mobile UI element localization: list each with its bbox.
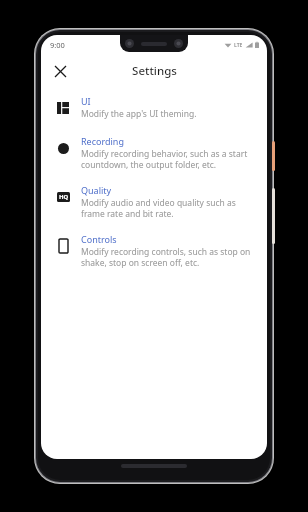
staticText: Settings — [132, 63, 177, 79]
staticText: Modify the app's UI theming. — [81, 108, 197, 120]
staticText: HQ — [59, 193, 69, 201]
button[interactable]: Close — [45, 56, 75, 86]
staticText: UI — [81, 95, 91, 107]
staticText: Recording — [81, 135, 124, 147]
button[interactable]: Controls — [41, 226, 267, 275]
staticText: Controls — [81, 233, 117, 245]
staticText: Quality — [81, 184, 112, 196]
staticText: 9:00 — [50, 40, 65, 50]
staticText: Modify audio and video quality such as f… — [81, 197, 255, 219]
staticText: LTE — [234, 42, 243, 49]
staticText: Modify recording behavior, such as a sta… — [81, 148, 255, 170]
button[interactable]: HQ — [41, 177, 267, 226]
staticText: Modify recording controls, such as stop … — [81, 246, 255, 268]
button[interactable]: UI — [41, 88, 267, 128]
button[interactable]: Recording — [41, 128, 267, 177]
